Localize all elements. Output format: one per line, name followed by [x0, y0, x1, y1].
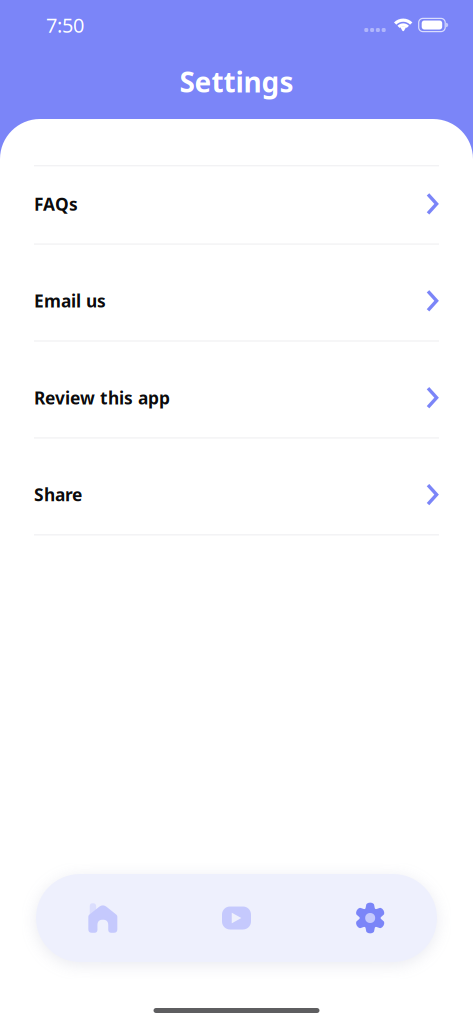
- button[interactable]: Settings: [303, 874, 437, 962]
- button[interactable]: Review this app: [0, 342, 473, 437]
- staticText: Share: [34, 483, 82, 506]
- staticText: 7:50: [46, 12, 84, 38]
- staticText: Email us: [34, 289, 106, 312]
- staticText: Settings: [179, 63, 293, 100]
- staticText: Review this app: [34, 386, 170, 409]
- button[interactable]: Home: [36, 874, 170, 962]
- staticText: FAQs: [34, 192, 78, 215]
- button[interactable]: FAQs: [0, 166, 473, 243]
- button[interactable]: Videos: [170, 874, 303, 962]
- button[interactable]: Email us: [0, 245, 473, 340]
- button[interactable]: Share: [0, 439, 473, 534]
